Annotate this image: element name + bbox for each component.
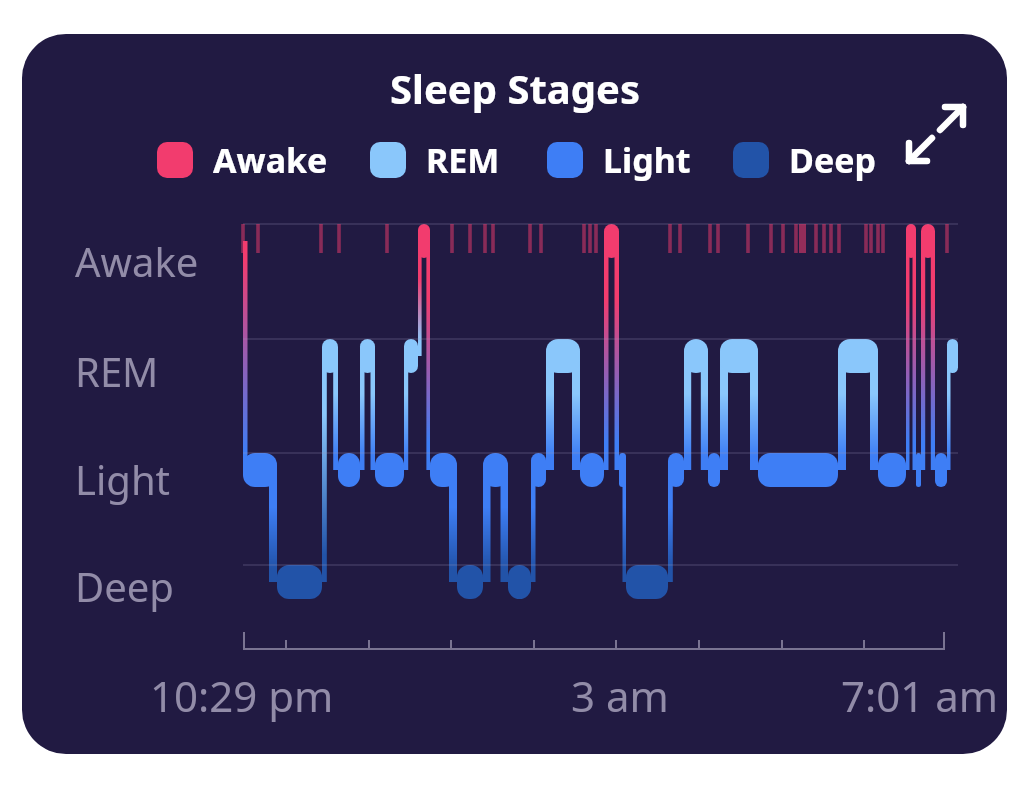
staticText: Light (75, 452, 171, 506)
staticText: REM (75, 344, 159, 398)
staticText: 7:01 am (841, 667, 999, 724)
staticText: Awake (75, 234, 199, 288)
staticText: 10:29 pm (150, 667, 334, 724)
staticText: Sleep Stages (390, 61, 640, 115)
staticText: REM (426, 137, 500, 183)
staticText: Light (603, 137, 691, 183)
button[interactable]: Deep (733, 137, 876, 183)
button[interactable]: Sleep Stages (22, 34, 1007, 754)
staticText: 3 am (571, 667, 669, 724)
staticText: Deep (789, 137, 876, 183)
button[interactable]: Light (547, 137, 691, 183)
staticText: Awake (213, 137, 328, 183)
button[interactable]: REM (370, 137, 500, 183)
button[interactable]: Awake (157, 137, 328, 183)
button[interactable] (891, 89, 981, 179)
staticText: Deep (75, 559, 174, 613)
